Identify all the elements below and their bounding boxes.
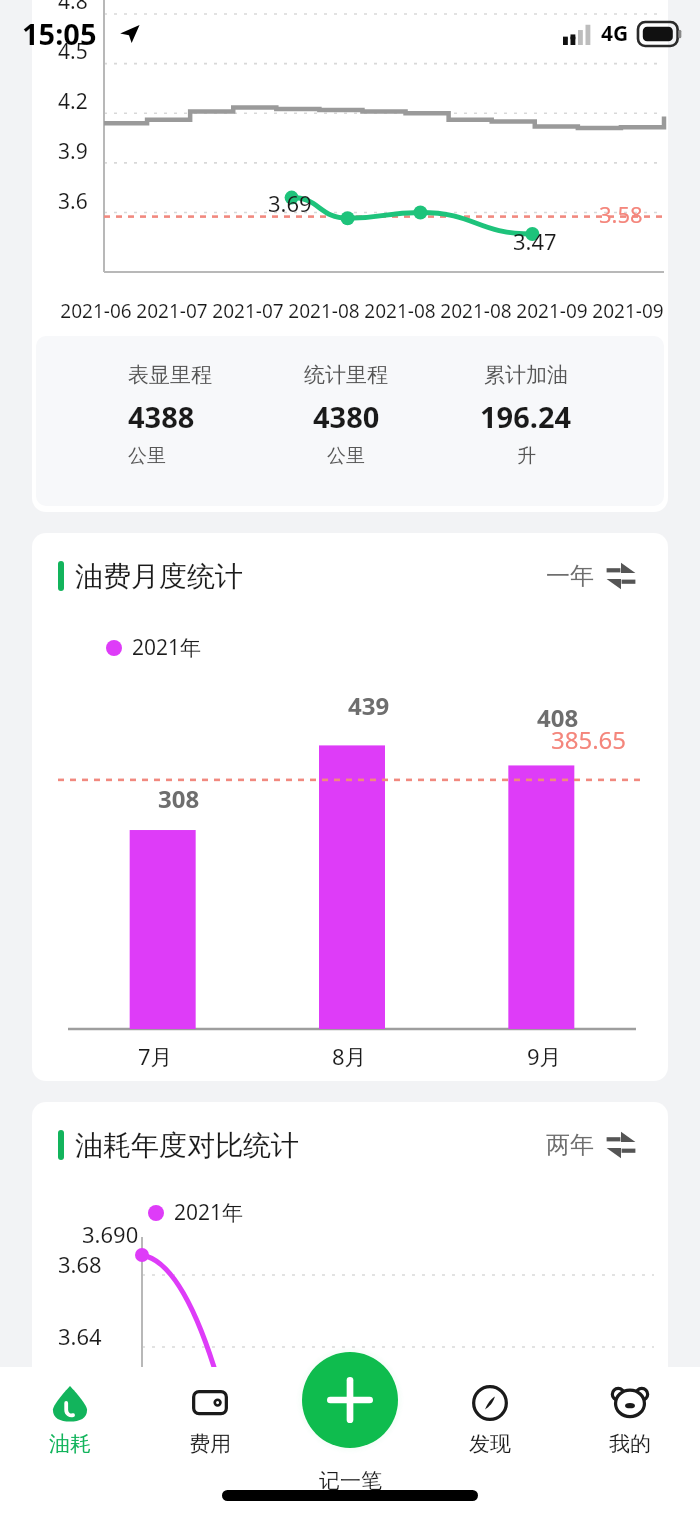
staticText: 3.690 — [82, 1219, 139, 1249]
staticText: 3.68 — [58, 1249, 102, 1279]
staticText: 3.6 — [58, 187, 88, 216]
staticText: 408 — [537, 701, 579, 734]
staticText: 2021-08 — [362, 298, 438, 324]
staticText: 4.5 — [58, 37, 88, 66]
staticText: 4380 — [313, 397, 380, 436]
staticText: 2021-06 — [58, 298, 134, 324]
staticText: 196.24 — [480, 397, 572, 436]
staticText: 439 — [348, 689, 390, 722]
staticText: 记一笔 — [319, 1468, 382, 1494]
staticText: 公里 — [327, 444, 365, 468]
staticText: 2021-09 — [514, 298, 590, 324]
staticText: 发现 — [469, 1431, 511, 1457]
other: Switch range — [606, 561, 636, 591]
staticText: 我的 — [609, 1431, 651, 1457]
staticText: 2021-07 — [134, 298, 210, 324]
other: Switch range — [606, 1130, 636, 1160]
staticText: 统计里程 — [304, 362, 388, 388]
staticText: 两年 — [546, 1130, 594, 1160]
staticText: 2021-07 — [210, 298, 286, 324]
staticText: 4G — [601, 19, 629, 48]
staticText: 费用 — [189, 1431, 231, 1457]
staticText: 一年 — [546, 561, 594, 591]
button[interactable]: 发现 — [420, 1367, 560, 1473]
staticText: 公里 — [128, 444, 166, 468]
button[interactable]: 记一笔 Add record — [302, 1352, 398, 1448]
staticText: 油耗年度对比统计 — [75, 1128, 299, 1163]
staticText: 2021-09 — [590, 298, 666, 324]
staticText: 385.65 — [551, 723, 627, 756]
staticText: 9月 — [527, 1041, 562, 1071]
staticText: 3.9 — [58, 137, 88, 166]
staticText: 油耗 — [49, 1431, 91, 1457]
staticText: 7月 — [138, 1041, 173, 1071]
staticText: 油费月度统计 — [75, 559, 243, 594]
staticText: 3.58 — [599, 199, 643, 229]
button[interactable]: 两年 — [540, 1124, 642, 1166]
staticText: 4388 — [128, 397, 195, 436]
staticText: 3.64 — [58, 1321, 102, 1351]
button[interactable]: 费用 — [140, 1367, 280, 1473]
staticText: 308 — [158, 782, 200, 815]
staticText: 升 — [517, 444, 536, 468]
button[interactable]: 一年 — [540, 555, 642, 597]
staticText: 3.69 — [268, 188, 312, 218]
staticText: 4.8 — [58, 0, 88, 16]
staticText: 4.2 — [58, 87, 88, 116]
staticText: 2021-08 — [286, 298, 362, 324]
staticText: 15:05 — [22, 14, 97, 53]
button[interactable]: 油耗 — [0, 1367, 140, 1473]
staticText: 8月 — [332, 1041, 367, 1071]
button[interactable]: 我的 — [560, 1367, 700, 1473]
staticText: 累计加油 — [484, 362, 568, 388]
staticText: 3.47 — [513, 226, 557, 256]
staticText: 表显里程 — [128, 362, 212, 388]
staticText: 2021-08 — [438, 298, 514, 324]
staticText: 2021年 — [132, 633, 202, 662]
staticText: 2021年 — [174, 1198, 244, 1227]
